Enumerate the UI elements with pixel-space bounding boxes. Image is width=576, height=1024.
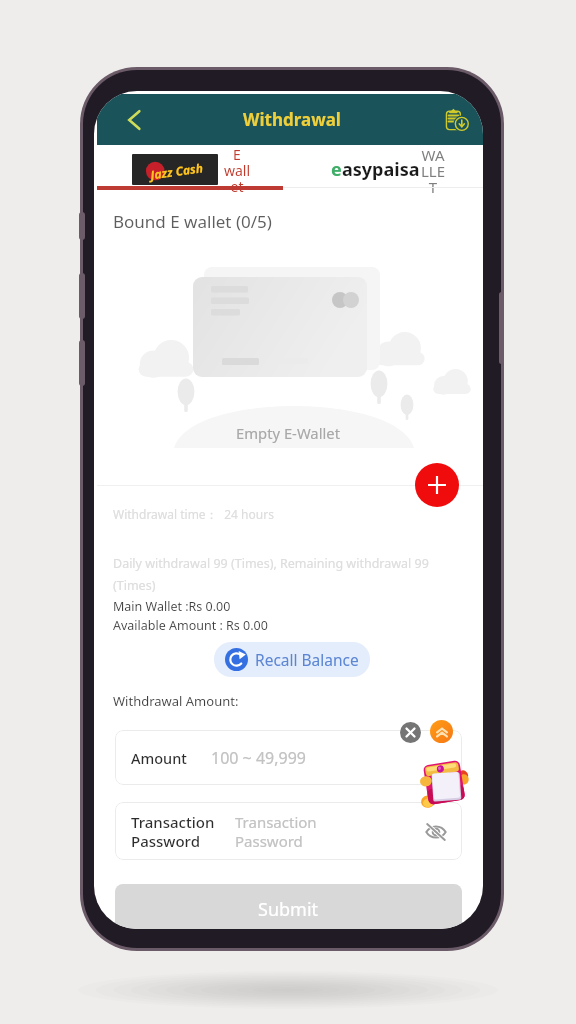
button[interactable]: Recall Balance [214,642,370,677]
staticText: e [331,157,342,182]
staticText: Available Amount : Rs 0.00 [113,617,268,634]
button[interactable]: Amount [115,730,462,785]
button[interactable]: Show password [422,818,450,846]
staticText: Withdrawal time： [113,506,218,522]
staticText: asypaisa [342,157,420,182]
button[interactable] [283,145,483,190]
staticText: Withdrawal Amount: [113,692,239,710]
staticText: Transaction Password [235,812,317,851]
staticText: Main Wallet :Rs 0.00 [113,598,231,615]
staticText: Submit [258,897,319,922]
button[interactable]: Rewards chest [417,756,471,807]
staticText: 24 hours [218,506,274,522]
staticText: Empty E-Wallet [236,423,340,443]
button[interactable]: Close [400,722,421,743]
staticText: Bound E wallet (0/5) [113,210,272,233]
staticText: E wall et [221,145,253,196]
button[interactable]: Withdrawal records [433,95,481,143]
staticText: Recall Balance [255,649,359,670]
button[interactable]: Submit [115,884,462,929]
staticText: WA LLE T [417,145,449,197]
staticText: Jazz Cash [149,159,204,183]
staticText: Daily withdrawal 99 (Times), Remaining w… [113,555,429,594]
button[interactable]: Add e-wallet [415,463,459,507]
staticText: Withdrawal [243,108,341,131]
staticText: Amount [131,748,187,768]
staticText: Transaction Password [131,812,215,851]
button[interactable] [97,145,283,190]
staticText: 100 ~ 49,999 [211,747,306,769]
button[interactable]: Expand rewards [430,720,453,743]
button[interactable]: Transaction Password [115,802,462,860]
button[interactable]: Back [110,96,158,144]
